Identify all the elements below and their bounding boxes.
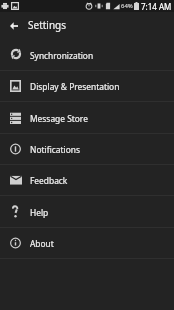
staticText: Display & Presentation <box>30 81 120 92</box>
staticText: 7:14 AM <box>141 1 172 12</box>
staticText: Synchronization <box>30 50 94 61</box>
staticText: Message Store <box>30 113 88 124</box>
button[interactable]: Notifications <box>0 134 174 165</box>
staticText: Feedback <box>30 175 68 186</box>
staticText: Help <box>30 207 49 218</box>
button[interactable]: Display & Presentation <box>0 71 174 102</box>
button[interactable]: About <box>0 228 174 259</box>
staticText: Settings <box>28 18 67 32</box>
button[interactable]: Help <box>0 197 174 228</box>
staticText: 64% <box>121 2 133 10</box>
button[interactable]: Message Store <box>0 103 174 134</box>
button[interactable]: Synchronization <box>0 39 174 71</box>
staticText: Notifications <box>30 144 80 155</box>
button[interactable]: Feedback <box>0 165 174 196</box>
staticText: About <box>30 238 54 249</box>
button[interactable]: Back <box>4 15 24 37</box>
